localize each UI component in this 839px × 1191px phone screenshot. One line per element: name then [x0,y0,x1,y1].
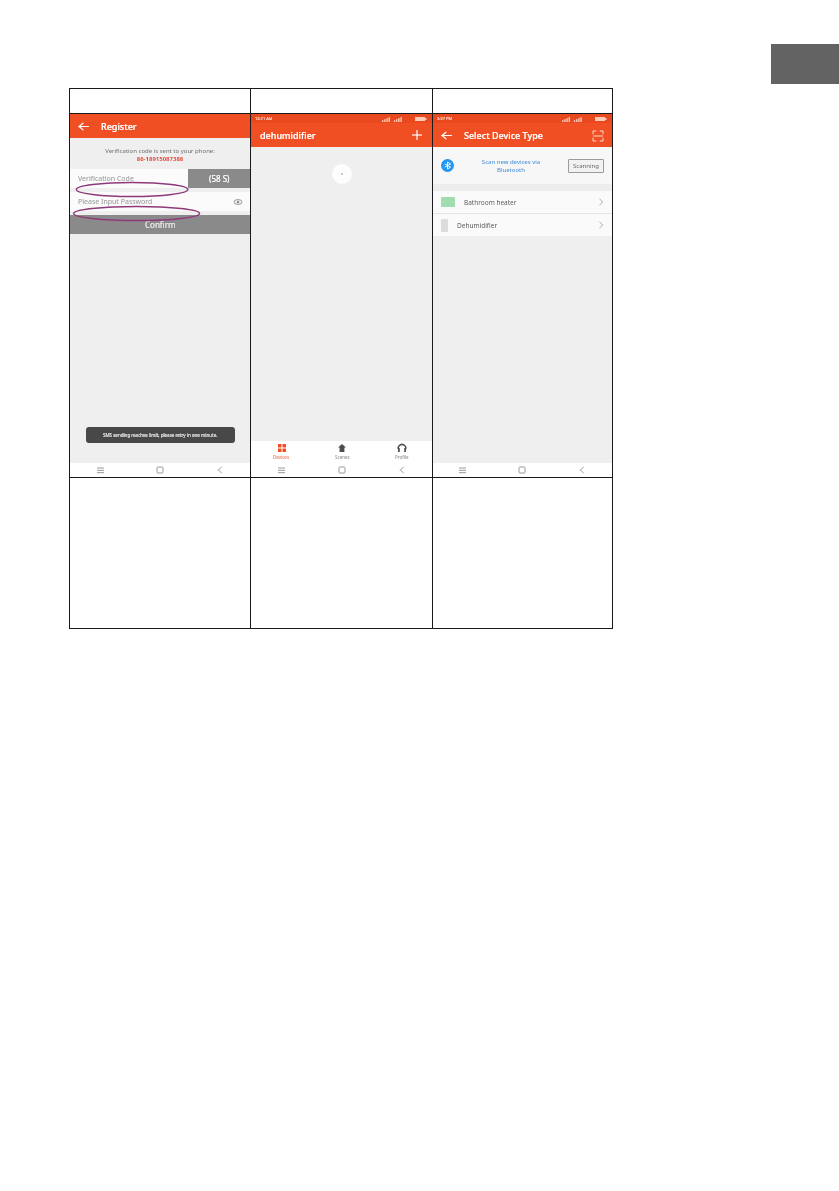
staticText: (58 S) [209,173,230,184]
staticText: Register [101,120,137,132]
button[interactable]: Back [190,463,250,477]
button[interactable]: Back [552,463,612,477]
button[interactable]: Recents [251,463,312,477]
staticText: 3:37 PM [437,116,453,121]
button[interactable]: Scan QR code [591,129,604,142]
staticText: Verification Code [78,174,134,184]
staticText: Please Input Password [78,197,234,207]
button[interactable]: Scenes [312,441,372,463]
button[interactable]: Recents [433,463,492,477]
button[interactable]: Add device [410,128,424,142]
staticText: Select Device Type [464,129,591,141]
button[interactable]: (58 S) [188,169,250,188]
staticText: Dehumidifier [457,221,598,230]
staticText: 86-18915087388 [70,155,250,163]
staticText: Confirm [145,219,176,230]
staticText: Devices [273,454,290,460]
button[interactable]: Profile [372,441,432,463]
button[interactable]: Back [441,130,452,141]
button[interactable]: Home [312,463,372,477]
button[interactable]: Bathroom heater [433,191,612,213]
other: Show password [234,198,242,206]
button[interactable]: Confirm [70,215,250,234]
button[interactable] [332,164,352,184]
staticText: dehumidifier [260,129,410,141]
staticText: Bathroom heater [464,198,598,207]
button[interactable]: Scan new devices via Bluetooth [433,147,612,184]
button[interactable]: Back [372,463,432,477]
button[interactable]: Please Input Password [70,192,250,211]
button[interactable]: Home [492,463,552,477]
button[interactable]: Devices [251,441,312,463]
staticText: Scan new devices via Bluetooth [460,158,562,174]
button[interactable]: Back [70,114,250,138]
button[interactable]: Home [130,463,190,477]
staticText: Verification code is sent to your phone: [70,147,250,155]
staticText: Scenes [335,454,350,460]
button[interactable]: Recents [70,463,130,477]
button[interactable]: Scanning [568,159,604,173]
staticText: Scanning [573,162,599,170]
button[interactable]: Verification Code [70,169,188,188]
button[interactable]: Dehumidifier [433,214,612,236]
staticText: SMS sending reaches limit, please retry … [103,432,218,438]
other: Back [78,121,89,132]
staticText: Profile [395,454,409,460]
staticText: 12:11 AM [255,116,273,121]
